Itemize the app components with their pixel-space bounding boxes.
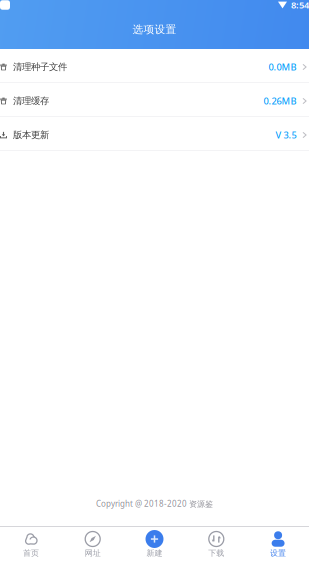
button[interactable]: 清理缓存 (0, 83, 309, 117)
staticText: 首页 (23, 548, 39, 558)
staticText: 新建 (146, 548, 162, 558)
button[interactable]: 设置 (247, 527, 309, 561)
button[interactable]: 清理种子文件 (0, 49, 309, 83)
button[interactable]: 网址 (62, 527, 124, 561)
staticText: 清理种子文件 (13, 61, 67, 73)
staticText: 网址 (85, 548, 101, 558)
staticText: 下载 (208, 548, 224, 558)
staticText: Copyright @ 2018-2020 资源鉴 (96, 498, 213, 509)
staticText: 0.0MB (269, 61, 297, 73)
staticText: 清理缓存 (13, 95, 49, 107)
staticText: 选项设置 (132, 23, 176, 36)
staticText: 版本更新 (13, 129, 49, 141)
button[interactable]: 新建 (124, 527, 185, 561)
button[interactable]: 版本更新 (0, 117, 309, 151)
button[interactable]: 首页 (0, 527, 62, 561)
staticText: 设置 (270, 548, 286, 558)
staticText: 0.26MB (264, 95, 297, 107)
staticText: 8:54 (291, 0, 309, 11)
button[interactable]: 下载 (185, 527, 247, 561)
staticText: V 3.5 (276, 129, 297, 141)
